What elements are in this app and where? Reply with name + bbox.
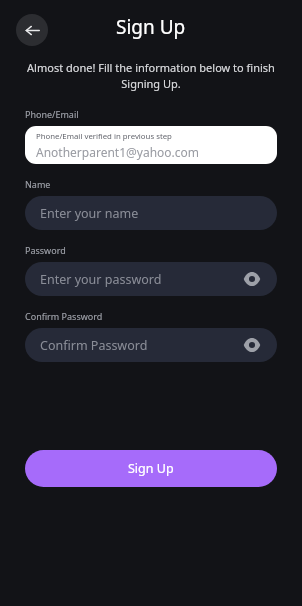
button[interactable]: Sign Up: [25, 450, 277, 487]
staticText: Almost done! Fill the information below …: [25, 60, 277, 92]
staticText: Phone/Email verified in previous step: [36, 131, 172, 142]
staticText: Confirm Password: [25, 310, 103, 322]
staticText: Anotherparent1@yahoo.com: [36, 144, 200, 160]
button[interactable]: Back: [16, 14, 48, 46]
button[interactable]: Enter your password: [25, 262, 277, 296]
button[interactable]: Show password: [242, 269, 262, 289]
button[interactable]: Phone/Email verified in previous step: [25, 126, 277, 164]
staticText: Enter your password: [40, 271, 162, 288]
button[interactable]: Confirm Password: [25, 328, 277, 362]
button[interactable]: Show password: [242, 335, 262, 355]
staticText: Sign Up: [116, 14, 186, 40]
button[interactable]: Enter your name: [25, 196, 277, 230]
staticText: Sign Up: [128, 460, 174, 477]
staticText: Confirm Password: [40, 337, 148, 354]
staticText: Phone/Email: [25, 108, 79, 120]
staticText: Enter your name: [40, 205, 139, 222]
staticText: Name: [25, 178, 51, 190]
staticText: Password: [25, 244, 66, 256]
